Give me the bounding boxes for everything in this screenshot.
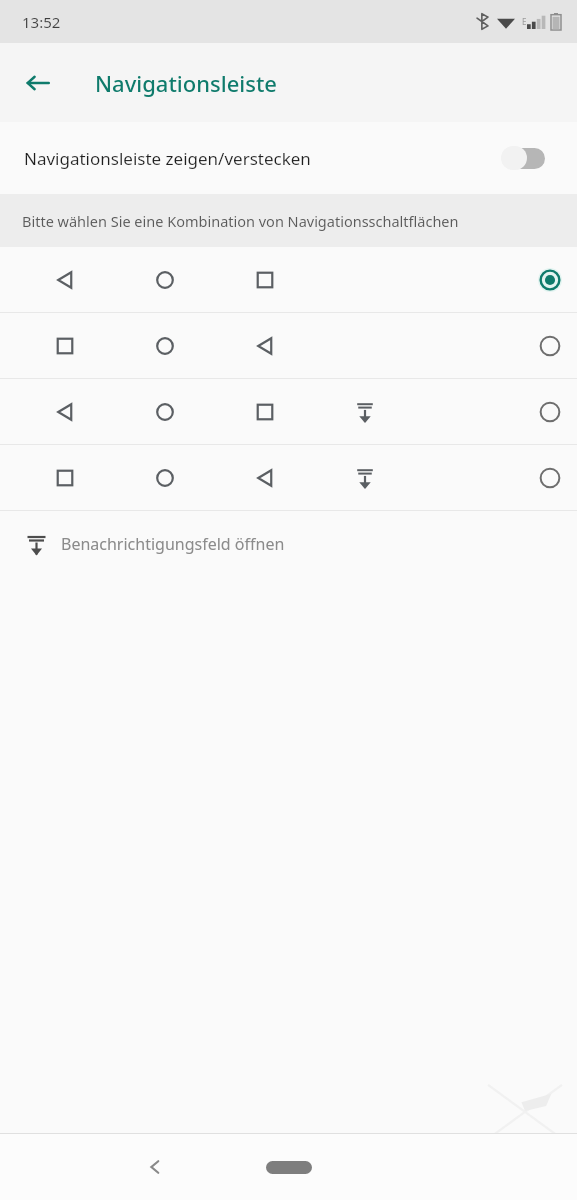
staticText: Benachrichtigungsfeld öffnen <box>61 533 285 555</box>
staticText: Navigationsleiste <box>95 68 277 98</box>
button[interactable] <box>0 313 577 378</box>
button[interactable] <box>0 379 577 444</box>
button[interactable]: Back <box>10 55 66 111</box>
button[interactable] <box>0 247 577 312</box>
staticText: Bitte wählen Sie eine Kombination von Na… <box>22 211 459 231</box>
staticText: E <box>522 16 527 27</box>
staticText: Navigationsleiste zeigen/verstecken <box>24 147 501 170</box>
button[interactable]: Back <box>131 1143 179 1191</box>
button[interactable] <box>0 445 577 510</box>
staticText: 13:52 <box>22 12 61 32</box>
button[interactable]: Home <box>257 1145 321 1189</box>
button[interactable]: Navigationsleiste zeigen/verstecken <box>0 122 577 194</box>
